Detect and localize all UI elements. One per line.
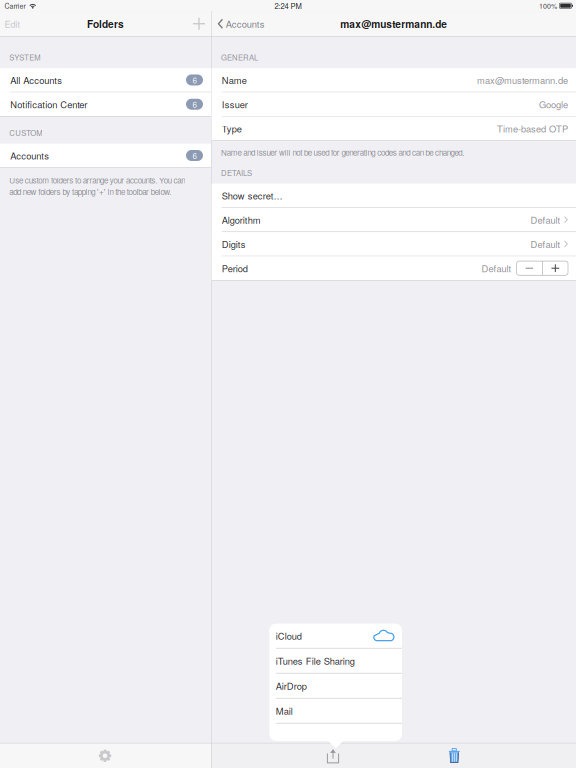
button[interactable]: Period <box>212 256 576 281</box>
button[interactable]: All Accounts <box>0 68 211 92</box>
button[interactable]: Accounts <box>0 144 211 168</box>
button[interactable]: Notification Center <box>0 92 211 117</box>
staticText: Show secret... <box>222 189 283 202</box>
staticText: iTunes File Sharing <box>276 654 355 667</box>
button[interactable]: Delete <box>436 743 472 768</box>
staticText: All Accounts <box>10 73 62 87</box>
staticText: max@mustermann.de <box>477 73 568 87</box>
staticText: Default <box>530 237 560 251</box>
button[interactable]: Accounts <box>212 11 273 36</box>
staticText: Type <box>222 122 242 135</box>
button[interactable]: Settings <box>87 743 123 768</box>
button[interactable]: Issuer <box>212 92 576 117</box>
staticText: GENERAL <box>221 52 258 63</box>
staticText: SYSTEM <box>9 52 40 63</box>
button[interactable]: Show secret... <box>212 184 576 208</box>
button[interactable]: Algorithm <box>212 208 576 232</box>
button[interactable]: AirDrop <box>269 673 402 698</box>
staticText: CUSTOM <box>9 127 42 138</box>
staticText: Accounts <box>10 149 49 162</box>
staticText: Notification Center <box>10 97 87 111</box>
button[interactable]: iTunes File Sharing <box>269 648 402 673</box>
button[interactable]: Mail <box>269 698 402 723</box>
staticText: Time-based OTP <box>497 122 568 135</box>
staticText: 6 <box>192 74 196 86</box>
staticText: Period <box>222 261 248 275</box>
staticText: 6 <box>192 150 196 161</box>
staticText: Issuer <box>222 97 248 111</box>
staticText: Mail <box>276 704 293 717</box>
staticText: 100% <box>539 1 557 11</box>
staticText: Default <box>530 213 560 226</box>
staticText: Name <box>222 73 247 87</box>
staticText: Folders <box>87 16 124 31</box>
staticText: Use custom folders to arrange your accou… <box>9 174 185 197</box>
button[interactable]: Share <box>315 743 351 768</box>
staticText: Carrier <box>5 1 26 11</box>
staticText: Algorithm <box>222 213 261 226</box>
staticText: Accounts <box>226 17 265 30</box>
staticText: Default <box>482 261 512 275</box>
staticText: max@mustermann.de <box>340 16 447 31</box>
button[interactable]: Type <box>212 117 576 141</box>
staticText: 2:24 PM <box>274 0 301 11</box>
staticText: 6 <box>192 98 196 110</box>
staticText: iCloud <box>276 629 302 642</box>
staticText: DETAILS <box>221 167 252 178</box>
button[interactable]: Name <box>212 68 576 92</box>
staticText: Name and issuer will not be used for gen… <box>221 146 464 158</box>
button[interactable]: Edit <box>0 11 28 36</box>
button[interactable]: Decrease period <box>517 261 542 275</box>
staticText: AirDrop <box>276 679 307 692</box>
button[interactable]: Increase period <box>543 261 568 275</box>
staticText: Edit <box>4 17 20 30</box>
button[interactable]: Add folder <box>185 11 211 36</box>
button[interactable]: Digits <box>212 232 576 256</box>
staticText: Digits <box>222 237 246 251</box>
staticText: Google <box>539 97 568 111</box>
button[interactable]: iCloud <box>269 623 402 648</box>
